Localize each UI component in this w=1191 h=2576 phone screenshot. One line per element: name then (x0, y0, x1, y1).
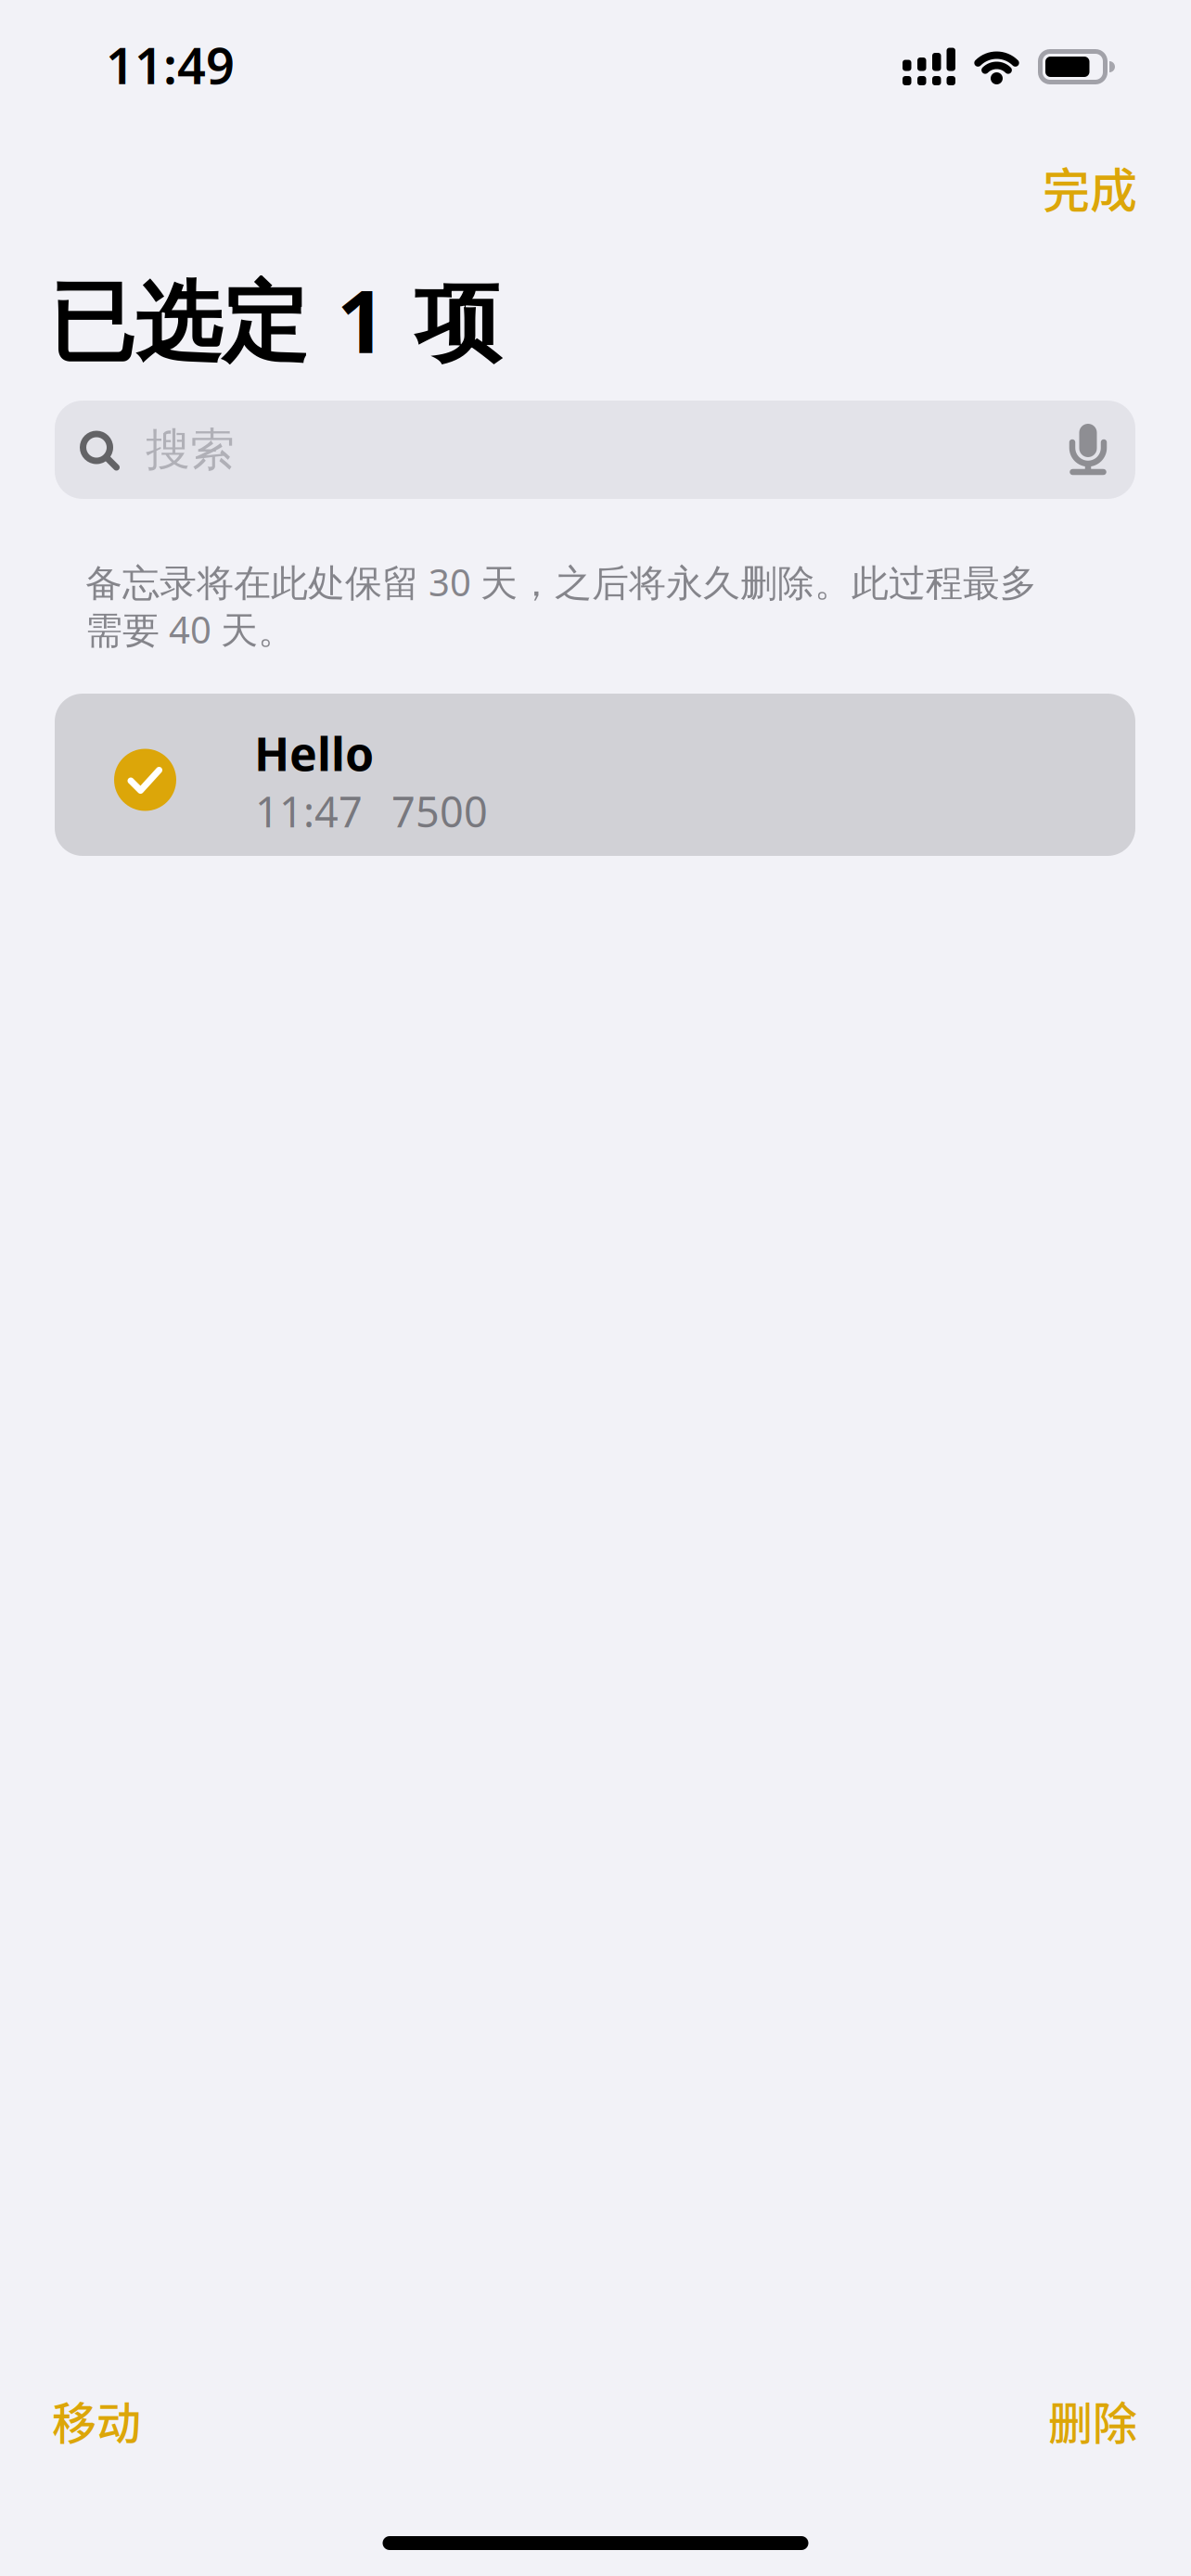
button[interactable]: 删除 (1048, 2389, 1137, 2452)
staticText: 需要 40 天。 (85, 605, 295, 654)
staticText: Hello (254, 722, 374, 784)
button[interactable]: 移动 (52, 2389, 141, 2452)
staticText: 搜索 (146, 422, 235, 477)
staticText: 11:49 (106, 32, 235, 98)
button[interactable]: Hello (55, 694, 1135, 856)
staticText: 删除 (1048, 2389, 1137, 2452)
staticText: 完成 (1043, 154, 1137, 221)
staticText: 11:47 (255, 784, 363, 839)
staticText: 已选定 1 项 (49, 262, 501, 377)
staticText: 移动 (52, 2389, 141, 2452)
button[interactable]: 完成 (1043, 154, 1137, 221)
staticText: 备忘录将在此处保留 30 天，之后将永久删除。此过程最多 (85, 557, 1037, 607)
button[interactable]: 搜索 (55, 401, 1135, 499)
staticText: 7500 (391, 784, 488, 839)
